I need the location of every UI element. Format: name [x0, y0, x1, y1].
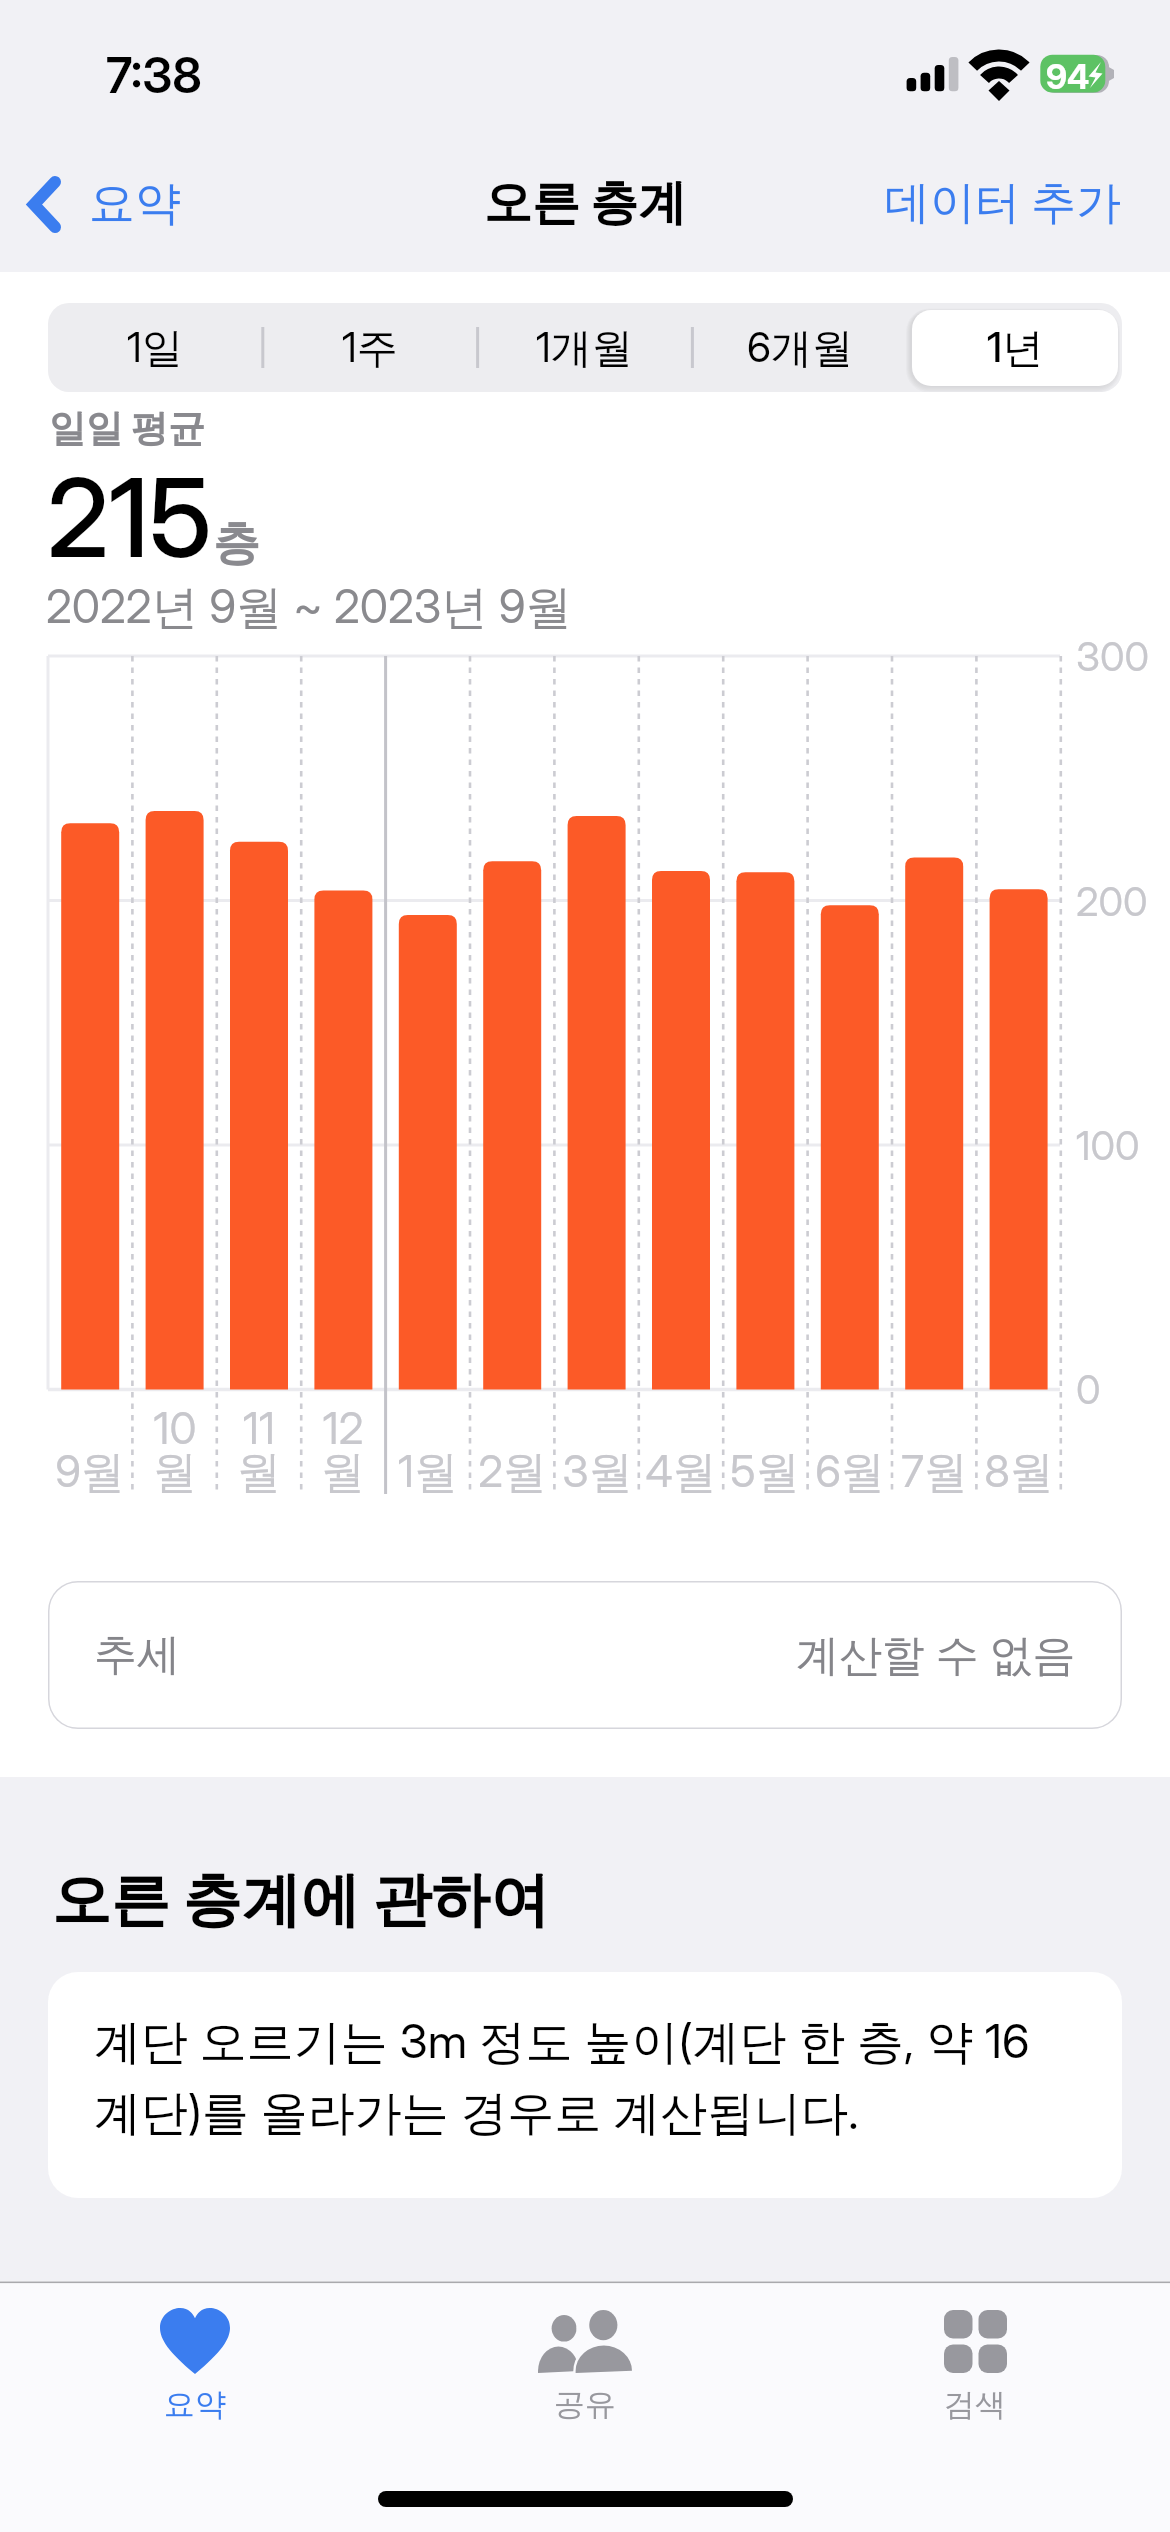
staticText: 2022년 9월 ~ 2023년 9월 — [46, 578, 572, 636]
staticText: 추세 — [94, 1628, 180, 1682]
staticText: 7:38 — [106, 46, 202, 105]
staticText: 100 — [1076, 1121, 1140, 1169]
staticText: 11 월 — [237, 1401, 281, 1500]
button[interactable]: 1주 — [262, 303, 477, 392]
button[interactable]: 6개월 — [692, 303, 907, 392]
staticText: 200 — [1076, 877, 1148, 925]
staticText: 4월 — [645, 1444, 717, 1500]
staticText: 계단 오르기는 3m 정도 높이(계단 한 층, 약 16 계단)를 올라가는 … — [94, 2012, 1080, 2143]
button[interactable]: 데이터 추가 — [855, 152, 1170, 253]
staticText: 데이터 추가 — [885, 174, 1122, 231]
staticText: 5월 — [730, 1444, 800, 1500]
staticText: 검색 — [944, 2385, 1006, 2424]
staticText: 1주 — [342, 322, 398, 374]
staticText: 1일 — [127, 322, 183, 374]
staticText: 층 — [213, 514, 260, 573]
staticText: 3월 — [562, 1444, 633, 1500]
staticText: 94 — [1046, 56, 1090, 97]
button[interactable]: 1일 — [48, 303, 262, 392]
button[interactable]: 1년 — [912, 310, 1118, 386]
staticText: 일일 평균 — [49, 405, 205, 452]
staticText: 6월 — [815, 1444, 885, 1500]
staticText: 요약 — [164, 2385, 226, 2424]
staticText: 오른 층계에 관하여 — [52, 1863, 550, 1938]
button[interactable]: 공유 — [390, 2281, 780, 2461]
staticText: 215 — [47, 452, 213, 583]
button[interactable]: 요약 — [0, 2281, 390, 2461]
staticText: 9월 — [55, 1444, 125, 1500]
button[interactable]: 검색 — [780, 2281, 1170, 2461]
staticText: 0 — [1076, 1365, 1101, 1413]
button[interactable]: 1개월 — [477, 303, 692, 392]
button[interactable]: 뒤로 가기 (요약) — [8, 156, 195, 252]
staticText: 계산할 수 없음 — [796, 1628, 1076, 1682]
staticText: 1년 — [987, 322, 1044, 374]
staticText: 6개월 — [747, 322, 853, 374]
staticText: 공유 — [554, 2385, 616, 2424]
staticText: 300 — [1076, 632, 1150, 680]
staticText: 오른 층계 — [484, 172, 687, 233]
staticText: 7월 — [901, 1444, 968, 1500]
staticText: 12 월 — [321, 1401, 365, 1500]
staticText: 2월 — [478, 1444, 547, 1500]
staticText: 8월 — [984, 1444, 1054, 1500]
staticText: 10 월 — [153, 1401, 197, 1500]
staticText: 요약 — [89, 175, 181, 233]
staticText: 1개월 — [536, 322, 633, 374]
button[interactable]: 추세 — [48, 1581, 1122, 1729]
staticText: 1월 — [398, 1444, 458, 1500]
